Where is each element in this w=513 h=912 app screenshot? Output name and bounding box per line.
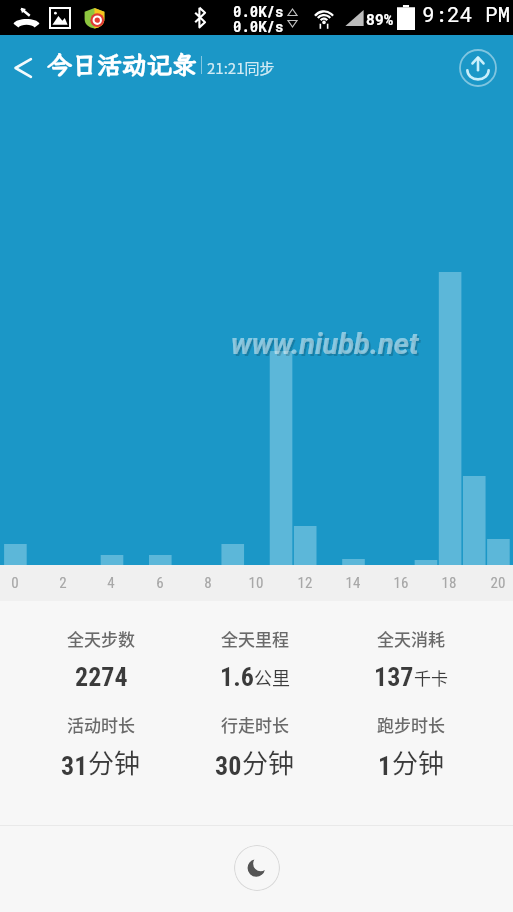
staticText: 18 [434,574,464,592]
staticText: 0.0K/s [233,2,284,20]
staticText: 137 [374,662,414,692]
button[interactable]: 全天里程 [177,614,333,689]
staticText: 12 [290,574,320,592]
button[interactable]: 全天步数 [23,614,179,689]
staticText: 6 [145,574,175,592]
staticText: 行走时长 [221,712,289,737]
staticText: 分钟 [88,743,141,781]
staticText: 2274 [75,662,128,692]
staticText: 全天里程 [221,626,289,651]
staticText: 8 [193,574,223,592]
staticText: 分钟 [242,743,295,781]
staticText: 21:21同步 [207,57,275,79]
staticText: 14 [338,574,368,592]
staticText: 20 [483,574,513,592]
staticText: 0 [0,574,30,592]
button[interactable]: 跑步时长 [333,700,489,775]
staticText: 1 [378,751,392,781]
staticText: 跑步时长 [377,712,445,737]
staticText: 30 [215,751,242,781]
staticText: 16 [386,574,416,592]
staticText: 1.6 [220,662,254,692]
button[interactable]: Back [3,35,43,100]
button[interactable]: 行走时长 [177,700,333,775]
staticText: 公里 [254,664,290,690]
button[interactable]: Sync [455,35,501,100]
staticText: 2 [48,574,78,592]
staticText: 今日活动记录 [47,48,198,81]
staticText: 0.0K/s [233,17,284,34]
staticText: 活动时长 [67,712,135,737]
staticText: 10 [241,574,271,592]
staticText: www.niubb.net [233,329,421,363]
staticText: 31 [61,751,88,781]
button[interactable]: 活动时长 [23,700,179,775]
button[interactable]: Sleep [234,845,280,891]
staticText: www.niubb.net [231,327,419,361]
staticText: 分钟 [392,743,445,781]
staticText: 全天消耗 [377,626,445,651]
staticText: 89% [366,9,394,29]
staticText: 千卡 [414,665,448,690]
staticText: 4 [96,574,126,592]
staticText: 9:24 PM [422,0,511,28]
button[interactable]: 全天消耗 [333,614,489,689]
staticText: 全天步数 [67,626,135,651]
